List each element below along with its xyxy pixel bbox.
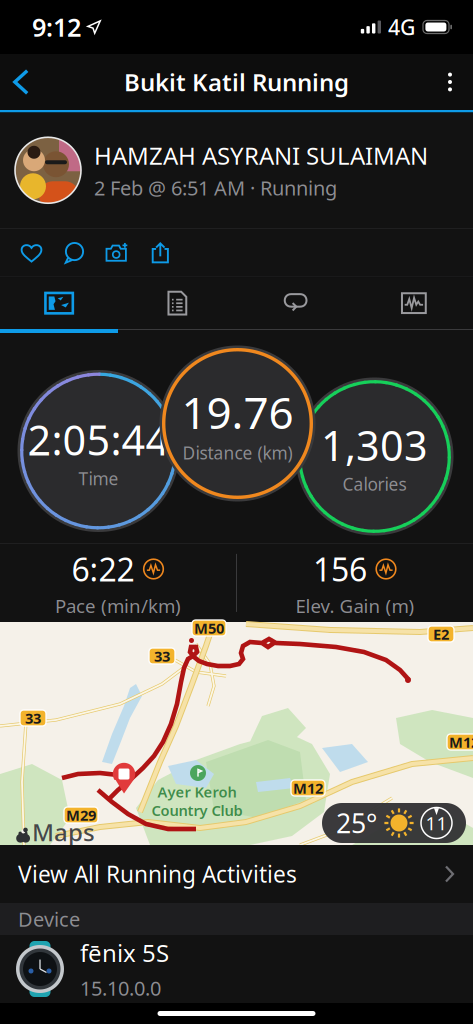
staticText: Elev. Gain (m) — [295, 593, 414, 618]
button[interactable]: View All Running Activities — [0, 845, 473, 903]
button[interactable]: Comment — [53, 228, 96, 278]
staticText: 33 — [25, 708, 41, 728]
staticText: 156 — [313, 548, 367, 590]
staticText: 2:05:44 — [27, 412, 169, 467]
button[interactable]: Laps — [236, 277, 355, 329]
staticText: Distance (km) — [182, 441, 292, 464]
button[interactable]: Details — [118, 277, 236, 329]
button[interactable]: Like — [10, 228, 53, 278]
staticText: 9:12 — [32, 10, 81, 44]
button[interactable]: fēnix 5S — [0, 935, 473, 1003]
button[interactable]: Back — [0, 54, 42, 110]
staticText: M29 — [66, 805, 96, 825]
staticText: 4G — [388, 13, 416, 41]
staticText: M50 — [194, 618, 224, 638]
staticText: Calories — [342, 472, 406, 495]
staticText: HAMZAH ASYRANI SULAIMAN — [94, 139, 428, 171]
button[interactable]: Charts — [355, 277, 473, 329]
staticText: 25° — [336, 805, 377, 841]
staticText: E2 — [433, 624, 449, 644]
staticText: 11 — [425, 811, 447, 835]
staticText: 2 Feb @ 6:51 AM · Running — [94, 174, 337, 201]
button[interactable]: More options — [427, 54, 473, 110]
staticText: 19.76 — [181, 383, 293, 441]
staticText: M12 — [449, 732, 473, 752]
staticText: 1,303 — [321, 417, 428, 472]
staticText: M12 — [293, 778, 323, 798]
staticText: 6:22 — [71, 548, 134, 590]
staticText: 33 — [154, 646, 170, 666]
staticText: fēnix 5S — [80, 937, 169, 969]
staticText: 15.10.0.0 — [80, 975, 161, 1001]
staticText: Pace (min/km) — [55, 593, 181, 618]
staticText: Device — [18, 906, 80, 932]
staticText: Country Club — [151, 800, 242, 820]
button[interactable]: Share — [139, 228, 182, 278]
staticText: Bukit Katil Running — [124, 66, 349, 98]
button[interactable]: Add photo — [96, 228, 139, 278]
staticText: Ayer Keroh — [157, 782, 236, 801]
button[interactable]: Map — [0, 277, 118, 329]
staticText: Maps — [32, 816, 95, 848]
staticText: Time — [78, 467, 118, 490]
staticText: View All Running Activities — [18, 859, 297, 889]
